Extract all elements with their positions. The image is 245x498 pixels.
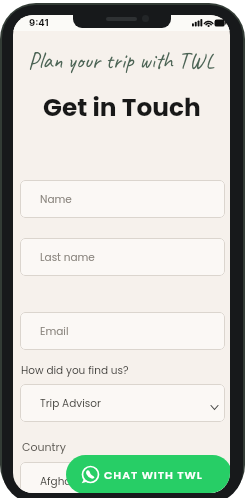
button[interactable]: Last name: [20, 238, 225, 276]
button[interactable]: Name: [20, 180, 225, 218]
staticText: Email: [40, 324, 69, 339]
button[interactable]: Email: [20, 312, 225, 350]
staticText: CHAT WITH TWL: [104, 467, 203, 482]
staticText: 9:41: [29, 17, 49, 28]
staticText: Get in Touch: [43, 90, 201, 125]
button[interactable]: CHAT WITH TWL: [66, 455, 230, 493]
button[interactable]: Afghanistan: [20, 462, 225, 493]
staticText: Name: [40, 192, 72, 207]
staticText: Trip Advisor: [40, 396, 101, 411]
staticText: Country: [22, 439, 66, 454]
staticText: Last name: [40, 250, 95, 265]
staticText: How did you find us?: [21, 363, 129, 378]
staticText: Plan your trip with TWL: [28, 46, 215, 74]
button[interactable]: Trip Advisor: [20, 384, 225, 422]
staticText: Afghanistan: [40, 474, 104, 489]
